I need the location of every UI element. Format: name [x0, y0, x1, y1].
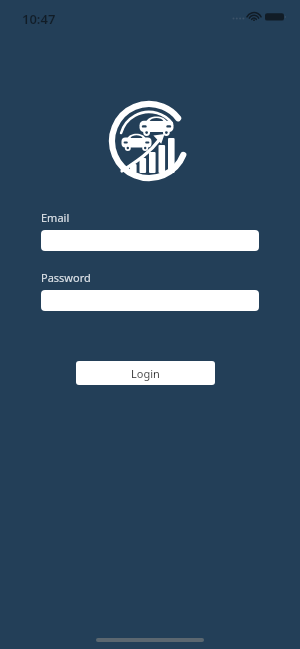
staticText: Password [41, 270, 91, 285]
button[interactable]: Login [76, 361, 215, 385]
staticText: Login [131, 366, 160, 381]
button[interactable]: Email input field [41, 230, 259, 251]
button[interactable]: Password input field [41, 290, 259, 311]
staticText: Email [41, 210, 70, 225]
staticText: 10:47 [22, 10, 56, 28]
